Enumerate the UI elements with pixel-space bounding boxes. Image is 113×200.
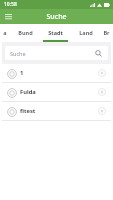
staticText: Suche <box>10 50 26 57</box>
staticText: Suche <box>46 12 67 22</box>
staticText: 10:58 <box>4 1 17 8</box>
button[interactable]: More info about fitest <box>97 106 107 116</box>
button[interactable]: Suche <box>5 46 108 60</box>
staticText: Bund <box>18 29 33 36</box>
button[interactable]: Br <box>100 24 113 42</box>
staticText: Br <box>103 29 110 36</box>
staticText: Fulda <box>20 88 97 96</box>
staticText: fitest <box>20 107 97 115</box>
button[interactable]: Land <box>71 24 100 42</box>
button[interactable]: fitest <box>2 102 111 120</box>
button[interactable]: Bund <box>10 24 40 42</box>
button[interactable]: Open navigation menu <box>3 11 14 22</box>
button[interactable]: a <box>0 24 10 42</box>
button[interactable]: 1 <box>2 64 111 82</box>
staticText: a <box>3 29 7 36</box>
button[interactable]: Fulda <box>2 83 111 101</box>
button[interactable]: Stadt <box>40 24 71 42</box>
staticText: 1 <box>20 69 97 77</box>
button[interactable]: More info about Fulda <box>97 87 107 97</box>
other: Search <box>94 49 103 58</box>
staticText: Land <box>79 29 93 36</box>
staticText: Stadt <box>48 29 63 36</box>
button[interactable]: More info about 1 <box>97 68 107 78</box>
